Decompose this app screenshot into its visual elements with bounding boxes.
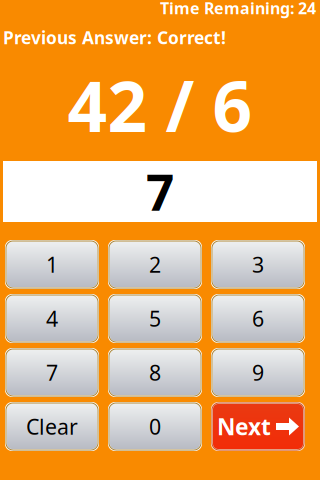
button[interactable]: 5 [109, 295, 201, 342]
button[interactable]: Next [212, 403, 304, 450]
button[interactable]: 0 [109, 403, 201, 450]
staticText: 2 [149, 250, 161, 279]
staticText: 0 [149, 412, 161, 441]
button[interactable]: 9 [212, 349, 304, 396]
staticText: 5 [149, 304, 161, 333]
staticText: 4 [46, 304, 58, 333]
staticText: 3 [252, 250, 264, 279]
staticText: Time Remaining: 24 [160, 0, 316, 19]
staticText: Previous Answer: Correct! [3, 26, 226, 49]
staticText: Clear [26, 412, 78, 441]
button[interactable]: 1 [6, 241, 98, 288]
staticText: Next [217, 411, 271, 441]
staticText: 7 [46, 358, 58, 387]
button[interactable]: 2 [109, 241, 201, 288]
staticText: 6 [252, 304, 264, 333]
staticText: 42 / 6 [67, 59, 252, 151]
staticText: 8 [149, 358, 161, 387]
staticText: 7 [146, 159, 174, 224]
button[interactable]: Clear [6, 403, 98, 450]
button[interactable]: 7 [6, 349, 98, 396]
button[interactable]: 4 [6, 295, 98, 342]
staticText: 9 [252, 358, 264, 387]
button[interactable]: 6 [212, 295, 304, 342]
button[interactable]: 8 [109, 349, 201, 396]
button[interactable]: 3 [212, 241, 304, 288]
staticText: 1 [46, 250, 58, 279]
